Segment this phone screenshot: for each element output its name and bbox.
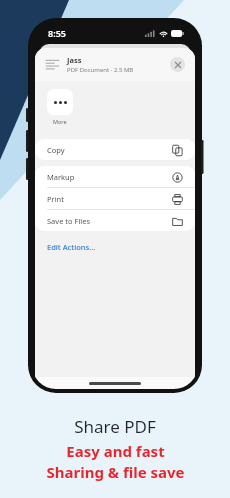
staticText: More xyxy=(53,118,67,125)
staticText: Markup xyxy=(47,172,171,182)
staticText: Print xyxy=(47,194,171,204)
button[interactable]: Close xyxy=(170,57,185,72)
staticText: PDF Document · 2.5 MB xyxy=(67,66,134,74)
staticText: Save to Files xyxy=(47,216,171,226)
staticText: Edit Actions... xyxy=(47,242,96,252)
staticText: Share PDF xyxy=(74,415,156,438)
staticText: Jass xyxy=(67,55,82,65)
button[interactable]: Edit Actions... xyxy=(35,240,195,258)
button[interactable]: Copy xyxy=(35,139,195,160)
button[interactable]: Save to Files xyxy=(35,210,195,231)
button[interactable]: Print xyxy=(35,188,195,209)
button[interactable]: Markup xyxy=(35,166,195,187)
staticText: 8:55 xyxy=(48,27,66,39)
button[interactable]: More xyxy=(47,89,73,115)
staticText: Copy xyxy=(47,145,171,155)
staticText: Sharing & file save xyxy=(46,462,185,482)
staticText: Easy and fast xyxy=(66,441,165,461)
